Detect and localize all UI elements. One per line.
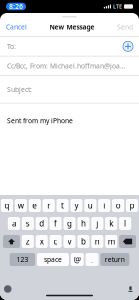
staticText: Cc/Bcc, From: Michael.hoffman@joa... bbox=[7, 61, 125, 70]
button[interactable]: Emoji keyboard bbox=[4, 285, 11, 293]
staticText: r bbox=[47, 200, 50, 211]
staticText: u bbox=[88, 200, 93, 211]
staticText: v bbox=[67, 236, 71, 247]
button[interactable]: x bbox=[36, 235, 48, 248]
button[interactable]: . bbox=[85, 253, 98, 266]
staticText: 123 bbox=[16, 255, 28, 264]
button[interactable]: t bbox=[56, 199, 69, 212]
staticText: k bbox=[109, 218, 113, 229]
button[interactable]: y bbox=[70, 199, 82, 212]
button[interactable]: v bbox=[63, 235, 76, 248]
button[interactable]: u bbox=[84, 199, 96, 212]
button[interactable]: m bbox=[105, 235, 117, 248]
staticText: y bbox=[74, 200, 78, 211]
staticText: Sent from my iPhone bbox=[7, 116, 73, 125]
staticText: space bbox=[44, 255, 62, 264]
button[interactable]: @ bbox=[71, 253, 84, 266]
staticText: x bbox=[40, 236, 44, 247]
button[interactable]: j bbox=[91, 217, 103, 230]
button[interactable]: q bbox=[1, 199, 13, 212]
staticText: b bbox=[81, 236, 86, 247]
button[interactable]: Dictate bbox=[128, 285, 133, 292]
staticText: a bbox=[12, 218, 16, 229]
staticText: m bbox=[108, 236, 115, 247]
staticText: d bbox=[39, 218, 44, 229]
button[interactable]: n bbox=[91, 235, 103, 248]
staticText: . bbox=[91, 254, 93, 265]
button[interactable]: s bbox=[22, 217, 34, 230]
staticText: w bbox=[18, 200, 24, 211]
button[interactable]: Cc/Bcc, From: Michael.hoffman@joa... bbox=[0, 56, 139, 75]
button[interactable]: p bbox=[126, 199, 138, 212]
button[interactable]: Shift bbox=[3, 235, 20, 248]
button[interactable]: f bbox=[50, 217, 62, 230]
staticText: o bbox=[116, 200, 121, 211]
staticText: LTE bbox=[113, 3, 122, 10]
button[interactable]: l bbox=[119, 217, 131, 230]
staticText: To: bbox=[7, 42, 16, 51]
staticText: @ bbox=[74, 254, 81, 265]
button[interactable]: a bbox=[8, 217, 20, 230]
button[interactable]: i bbox=[98, 199, 110, 212]
staticText: c bbox=[54, 236, 58, 247]
button[interactable]: h bbox=[77, 217, 89, 230]
button[interactable]: e bbox=[29, 199, 41, 212]
button[interactable]: z bbox=[22, 235, 34, 248]
staticText: l bbox=[124, 218, 126, 229]
button[interactable]: 123 bbox=[10, 253, 35, 266]
button[interactable]: Delete bbox=[119, 235, 136, 248]
staticText: g bbox=[67, 218, 72, 229]
staticText: 8:26 bbox=[9, 2, 23, 11]
staticText: New Message bbox=[49, 22, 94, 31]
staticText: i bbox=[103, 200, 105, 211]
button[interactable]: return bbox=[100, 253, 129, 266]
button[interactable]: c bbox=[50, 235, 62, 248]
button[interactable]: Send bbox=[113, 21, 139, 32]
staticText: Subject: bbox=[7, 85, 32, 94]
staticText: s bbox=[26, 218, 30, 229]
staticText: Cancel bbox=[6, 22, 27, 31]
staticText: q bbox=[4, 200, 9, 211]
button[interactable]: k bbox=[105, 217, 117, 230]
button[interactable]: w bbox=[15, 199, 27, 212]
button[interactable]: g bbox=[63, 217, 76, 230]
staticText: z bbox=[26, 236, 30, 247]
button[interactable]: r bbox=[43, 199, 55, 212]
button[interactable]: b bbox=[77, 235, 89, 248]
button[interactable]: Cancel bbox=[0, 21, 31, 32]
staticText: h bbox=[81, 218, 86, 229]
button[interactable]: d bbox=[36, 217, 48, 230]
button[interactable]: To: bbox=[0, 37, 139, 56]
staticText: Send bbox=[117, 22, 133, 31]
button[interactable]: Subject: bbox=[0, 76, 139, 103]
staticText: j bbox=[96, 218, 98, 229]
staticText: n bbox=[95, 236, 100, 247]
staticText: return bbox=[105, 255, 125, 264]
staticText: p bbox=[130, 200, 135, 211]
staticText: e bbox=[32, 200, 37, 211]
button[interactable]: o bbox=[112, 199, 124, 212]
staticText: t bbox=[61, 200, 64, 211]
button[interactable]: space bbox=[37, 253, 69, 266]
staticText: f bbox=[54, 218, 57, 229]
